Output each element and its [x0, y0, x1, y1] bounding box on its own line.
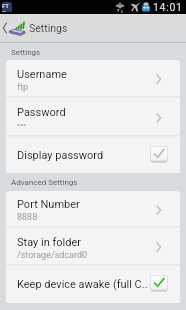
staticText: Port Number [17, 198, 80, 211]
staticText: 14:01 [153, 1, 183, 13]
staticText: FTP [2, 2, 12, 12]
staticText: Settings [11, 48, 41, 57]
button[interactable]: Password [6, 98, 180, 137]
button[interactable]: Keep device awake (full C.. [6, 266, 180, 303]
staticText: Stay in folder [17, 236, 81, 249]
staticText: Keep device awake (full C.. [17, 278, 150, 291]
button[interactable]: Port Number [6, 191, 180, 228]
button[interactable]: Username [6, 60, 180, 98]
button[interactable]: Display password [6, 137, 180, 173]
staticText: Settings [29, 22, 68, 34]
staticText: 8888 [17, 212, 38, 223]
button[interactable]: Stay in folder [6, 228, 180, 266]
staticText: Password [17, 106, 66, 119]
staticText: ftp [17, 82, 29, 93]
staticText: ••• [17, 120, 27, 131]
staticText: Advanced Settings [11, 178, 78, 187]
button[interactable]: Navigate up [0, 14, 186, 42]
staticText: Display password [17, 149, 150, 162]
staticText: /storage/sdcard0 [17, 250, 88, 261]
staticText: Username [17, 68, 67, 81]
